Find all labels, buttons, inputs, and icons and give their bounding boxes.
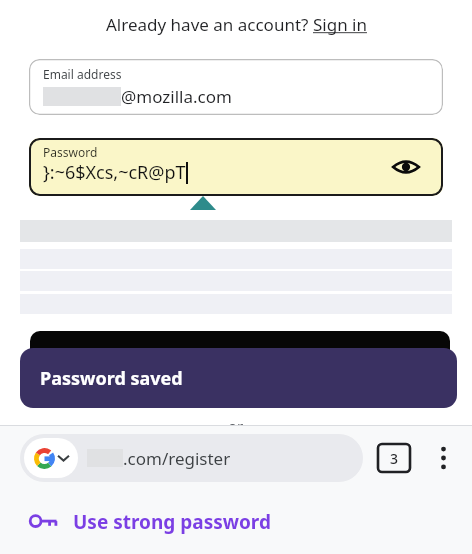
button[interactable]: Search engine: Google xyxy=(24,438,78,478)
button[interactable]: Switch tabs, 3 open xyxy=(378,444,410,472)
staticText: Sign in xyxy=(313,13,367,36)
button[interactable] xyxy=(30,331,450,377)
button[interactable]: More options xyxy=(427,442,459,474)
button[interactable]: Email address xyxy=(29,59,443,115)
staticText: }:~6$Xcs,~cR@pT xyxy=(43,160,186,185)
button[interactable]: Sign in xyxy=(313,13,367,36)
staticText: Email address xyxy=(43,66,122,82)
staticText: Password saved xyxy=(40,366,183,391)
button[interactable]: Show password xyxy=(389,150,423,184)
staticText: Already have an account? xyxy=(106,13,313,36)
button[interactable]: Use strong password xyxy=(0,490,472,554)
staticText: 3 xyxy=(390,449,399,468)
staticText: .com/register xyxy=(123,447,231,470)
button[interactable]: Password saved xyxy=(20,348,457,408)
staticText: Password xyxy=(43,144,98,160)
staticText: @mozilla.com xyxy=(121,85,232,108)
staticText: or xyxy=(228,416,244,436)
button[interactable]: Password xyxy=(29,138,443,196)
button[interactable]: Search engine: Google xyxy=(20,434,363,482)
staticText: Use strong password xyxy=(73,509,271,535)
